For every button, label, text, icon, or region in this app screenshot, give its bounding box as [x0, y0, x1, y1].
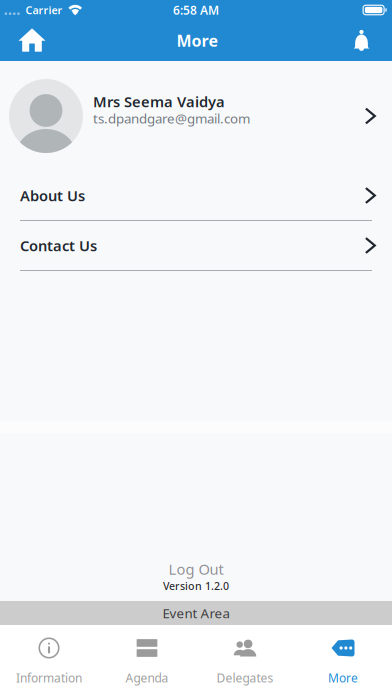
staticText: Contact Us [20, 236, 97, 255]
staticText: Mrs Seema Vaidya [93, 92, 225, 111]
staticText: Event Area [162, 604, 229, 622]
button[interactable]: Delegates [196, 625, 294, 696]
staticText: Log Out [168, 559, 223, 579]
staticText: 6:58 AM [173, 2, 219, 18]
staticText: About Us [20, 186, 85, 205]
staticText: More [176, 30, 218, 51]
staticText: Information [16, 670, 82, 686]
button[interactable]: Home [0, 19, 64, 60]
staticText: Version 1.2.0 [163, 579, 229, 593]
staticText: Carrier [25, 3, 62, 17]
button[interactable]: About Us [0, 171, 392, 221]
button[interactable]: Agenda [98, 625, 196, 696]
staticText: ts.dpandgare@gmail.com [93, 109, 250, 127]
staticText: Agenda [125, 670, 168, 686]
button[interactable]: Log Out [168, 559, 223, 579]
staticText: Delegates [216, 670, 273, 686]
button[interactable]: Contact Us [0, 221, 392, 271]
button[interactable]: Mrs Seema Vaidya [0, 61, 392, 171]
button[interactable]: More [294, 625, 392, 696]
button[interactable]: Information [0, 625, 98, 696]
button[interactable]: Notifications [331, 19, 392, 60]
staticText: More [328, 670, 358, 686]
